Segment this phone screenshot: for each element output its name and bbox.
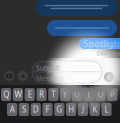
button[interactable]: U: [72, 88, 82, 101]
button[interactable]: K: [90, 103, 100, 116]
button[interactable]: F: [42, 103, 53, 116]
button[interactable]: Q: [1, 88, 11, 101]
button[interactable]: L: [101, 103, 112, 116]
button[interactable]: [36, 0, 117, 16]
button[interactable]: [36, 0, 117, 16]
button[interactable]: Spotlight: [79, 38, 120, 49]
button[interactable]: A: [7, 103, 17, 116]
button[interactable]: W: [13, 88, 23, 101]
button[interactable]: Subject: [32, 61, 102, 83]
button[interactable]: Send: [104, 72, 114, 82]
button[interactable]: G: [54, 103, 64, 116]
button[interactable]: F: [42, 103, 53, 116]
button[interactable]: J: [78, 103, 88, 116]
button[interactable]: H: [66, 103, 76, 116]
button[interactable]: iMessage apps: [18, 71, 28, 81]
button[interactable]: iMessage apps: [18, 71, 28, 81]
button[interactable]: W: [13, 88, 23, 101]
button[interactable]: [36, 0, 117, 16]
button[interactable]: E: [25, 88, 35, 101]
button[interactable]: [36, 0, 117, 16]
button[interactable]: Subject: [32, 61, 102, 83]
button[interactable]: U: [72, 88, 82, 101]
button[interactable]: S: [19, 103, 29, 116]
button[interactable]: J: [78, 103, 88, 116]
button[interactable]: Spotlight: [79, 38, 120, 49]
button[interactable]: Y: [60, 88, 70, 101]
button[interactable]: iMessage apps: [18, 71, 28, 81]
button[interactable]: Y: [60, 88, 70, 101]
button[interactable]: [36, 0, 117, 16]
button[interactable]: F: [42, 103, 53, 116]
button[interactable]: H: [66, 103, 76, 116]
button[interactable]: H: [66, 103, 76, 116]
button[interactable]: Y: [60, 88, 70, 101]
button[interactable]: A: [7, 103, 17, 116]
button[interactable]: Spotlight: [79, 38, 120, 49]
button[interactable]: L: [101, 103, 112, 116]
button[interactable]: Q: [1, 88, 11, 101]
button[interactable]: R: [36, 88, 47, 101]
button[interactable]: W: [13, 88, 23, 101]
button[interactable]: O: [95, 88, 106, 101]
button[interactable]: D: [31, 103, 41, 116]
button[interactable]: S: [19, 103, 29, 116]
button[interactable]: H: [66, 103, 76, 116]
button[interactable]: iMessage apps: [18, 71, 28, 81]
button[interactable]: Subject: [32, 61, 102, 83]
button[interactable]: Spotlight: [79, 38, 120, 49]
button[interactable]: [47, 20, 117, 36]
button[interactable]: A: [7, 103, 17, 116]
button[interactable]: U: [72, 88, 82, 101]
button[interactable]: T: [48, 88, 58, 101]
button[interactable]: O: [95, 88, 106, 101]
button[interactable]: Y: [60, 88, 70, 101]
button[interactable]: F: [42, 103, 53, 116]
button[interactable]: A: [7, 103, 17, 116]
button[interactable]: Subject: [32, 61, 102, 83]
button[interactable]: G: [54, 103, 64, 116]
button[interactable]: I: [84, 88, 94, 101]
button[interactable]: F: [42, 103, 53, 116]
button[interactable]: Y: [60, 88, 70, 101]
button[interactable]: Y: [60, 88, 70, 101]
button[interactable]: G: [54, 103, 64, 116]
button[interactable]: U: [72, 88, 82, 101]
button[interactable]: D: [31, 103, 41, 116]
button[interactable]: T: [48, 88, 58, 101]
button[interactable]: iMessage apps: [18, 71, 28, 81]
button[interactable]: U: [72, 88, 82, 101]
button[interactable]: E: [25, 88, 35, 101]
button[interactable]: G: [54, 103, 64, 116]
button[interactable]: T: [48, 88, 58, 101]
button[interactable]: I: [84, 88, 94, 101]
button[interactable]: Y: [60, 88, 70, 101]
button[interactable]: P: [107, 88, 117, 101]
button[interactable]: U: [72, 88, 82, 101]
button[interactable]: U: [72, 88, 82, 101]
button[interactable]: [36, 0, 117, 16]
button[interactable]: W: [13, 88, 23, 101]
button[interactable]: R: [36, 88, 47, 101]
button[interactable]: D: [31, 103, 41, 116]
button[interactable]: A: [7, 103, 17, 116]
button[interactable]: Take photo: [4, 71, 14, 81]
button[interactable]: G: [54, 103, 64, 116]
button[interactable]: Take photo: [4, 71, 14, 81]
button[interactable]: Q: [1, 88, 11, 101]
button[interactable]: Q: [1, 88, 11, 101]
button[interactable]: S: [19, 103, 29, 116]
button[interactable]: L: [101, 103, 112, 116]
button[interactable]: [36, 0, 117, 16]
button[interactable]: J: [78, 103, 88, 116]
button[interactable]: Take photo: [4, 71, 14, 81]
button[interactable]: A: [7, 103, 17, 116]
button[interactable]: iMessage apps: [18, 71, 28, 81]
button[interactable]: T: [48, 88, 58, 101]
button[interactable]: [47, 20, 117, 36]
button[interactable]: [47, 20, 117, 36]
button[interactable]: G: [54, 103, 64, 116]
button[interactable]: K: [90, 103, 100, 116]
button[interactable]: U: [72, 88, 82, 101]
button[interactable]: E: [25, 88, 35, 101]
